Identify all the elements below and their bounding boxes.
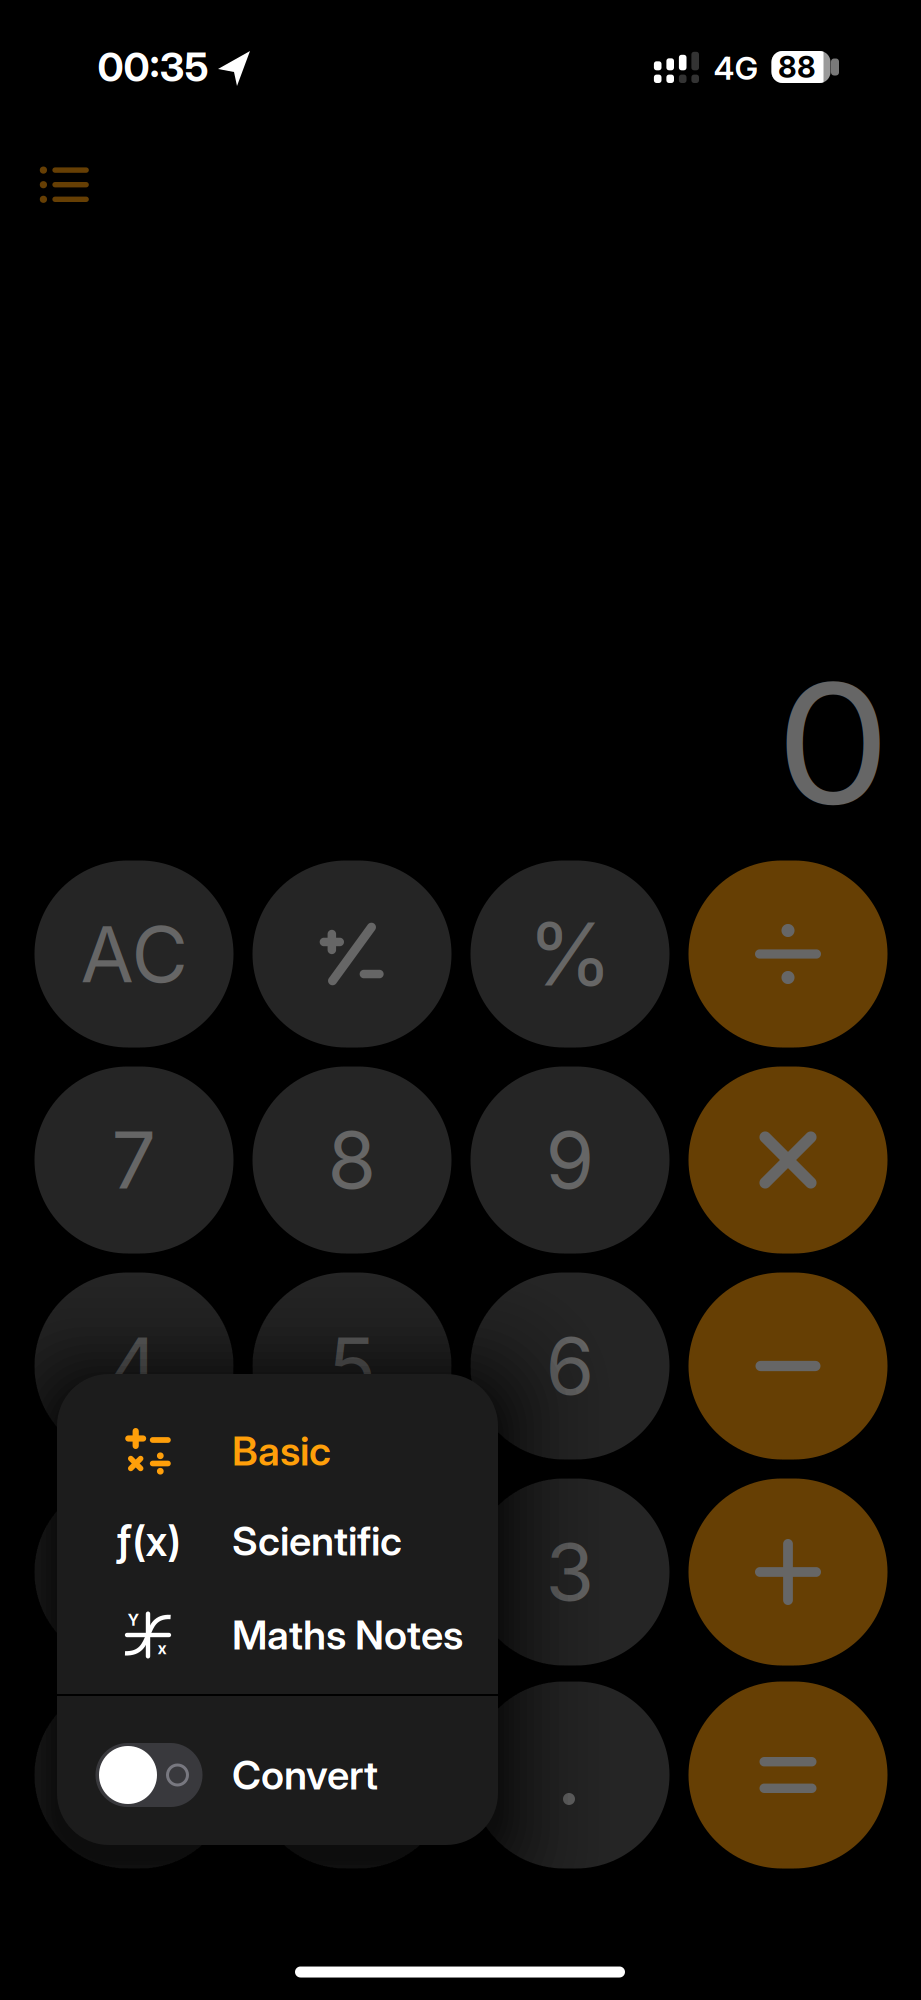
staticText: 9 [545, 1114, 594, 1206]
button[interactable]: 0 [252, 1681, 451, 1868]
button[interactable]: 2 [252, 1478, 451, 1665]
staticText: 1 [118, 1526, 150, 1618]
button[interactable]: 4 [34, 1272, 233, 1459]
staticText: 4G [713, 49, 758, 87]
staticText: 8 [327, 1114, 376, 1206]
button[interactable]: 6 [470, 1272, 669, 1459]
staticText: 7 [111, 1114, 156, 1206]
staticText: Basic [232, 1427, 331, 1475]
button[interactable]: Minus [688, 1272, 887, 1459]
button[interactable]: ƒ(x) [57, 1495, 498, 1587]
staticText: 00:35 [97, 43, 208, 91]
button[interactable]: Convert [57, 1727, 498, 1823]
button[interactable]: Divide [688, 860, 887, 1047]
staticText: 2 [328, 1526, 376, 1618]
button[interactable]: 3 [470, 1478, 669, 1665]
staticText: ƒ(x) [115, 1517, 180, 1565]
button[interactable]: Decimal Point [470, 1681, 669, 1868]
staticText: % [527, 903, 612, 1005]
staticText: 3 [545, 1526, 594, 1618]
staticText: 5 [328, 1320, 376, 1412]
staticText: 88 [778, 50, 816, 84]
staticText: Y [127, 1611, 139, 1629]
button[interactable]: Plus Minus [252, 860, 451, 1047]
button[interactable]: 9 [470, 1066, 669, 1253]
staticText: Scientific [232, 1517, 402, 1565]
staticText: x [157, 1639, 166, 1658]
button[interactable]: Multiply [688, 1066, 887, 1253]
button[interactable]: Plus [688, 1478, 887, 1665]
button[interactable]: 1 [34, 1478, 233, 1665]
staticText: Maths Notes [232, 1611, 463, 1659]
button[interactable]: 5 [252, 1272, 451, 1459]
button[interactable]: Y [57, 1589, 498, 1681]
staticText: 6 [545, 1320, 594, 1412]
staticText: AC [80, 908, 187, 1000]
button[interactable]: Equals [688, 1681, 887, 1868]
button[interactable]: 7 [34, 1066, 233, 1253]
staticText: 0 [109, 1729, 159, 1821]
staticText: 4 [108, 1320, 159, 1412]
button[interactable]: 8 [252, 1066, 451, 1253]
staticText: 0 [327, 1729, 377, 1821]
button[interactable]: History [10, 130, 120, 240]
button[interactable]: All Clear [34, 860, 233, 1047]
button[interactable]: Percent [470, 860, 669, 1047]
staticText: 0 [781, 645, 885, 840]
staticText: Convert [232, 1751, 378, 1799]
button[interactable]: 0 [34, 1681, 233, 1868]
button[interactable]: Basic [57, 1405, 498, 1497]
